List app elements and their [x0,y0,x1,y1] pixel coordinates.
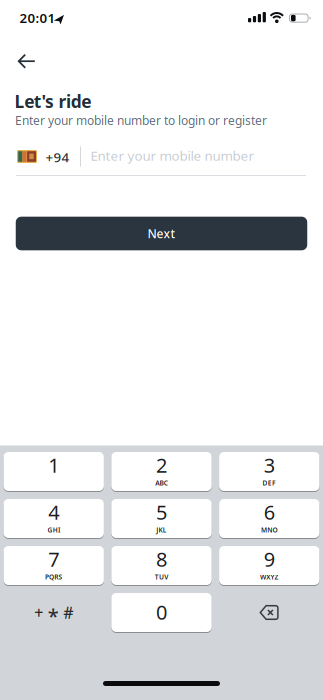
staticText: Next [147,225,175,241]
staticText: # [63,602,73,623]
staticText: MNO [261,526,277,534]
button[interactable]: Back [7,50,45,72]
button[interactable]: 8 [111,546,212,585]
staticText: +94 [45,148,69,166]
staticText: 9 [264,546,275,572]
staticText: Enter your mobile number to login or reg… [15,112,267,128]
button[interactable]: Next [16,217,307,250]
staticText: 4 [48,499,59,525]
button[interactable]: 5 [111,499,212,538]
staticText: DEF [263,479,276,487]
button[interactable]: 4 [3,499,104,538]
staticText: ABC [155,479,168,487]
staticText: 7 [48,546,59,572]
button[interactable]: 6 [219,499,319,538]
staticText: 20:01 [19,9,55,27]
staticText: * [48,602,59,629]
button[interactable]: 9 [219,546,319,585]
staticText: TUV [155,573,168,581]
staticText: 2 [156,452,167,478]
staticText: 1 [48,452,59,478]
button[interactable]: 3 [219,452,319,491]
staticText: Let's ride [14,90,91,113]
button[interactable]: 0 [111,593,212,632]
staticText: 6 [264,499,275,525]
staticText: WXYZ [260,573,279,581]
staticText: GHI [47,526,60,534]
staticText: PQRS [45,573,62,581]
button[interactable]: More symbols [3,593,104,632]
staticText: Enter your mobile number [90,147,254,164]
button[interactable]: 1 [3,452,104,491]
button[interactable]: 2 [111,452,212,491]
button[interactable]: Enter your mobile number [90,142,305,168]
button[interactable]: Delete [219,593,319,632]
staticText: 8 [156,546,167,572]
staticText: 3 [264,452,275,478]
staticText: 5 [156,499,167,525]
staticText: JKL [156,526,167,534]
button[interactable]: 7 [3,546,104,585]
staticText: + [34,602,43,623]
staticText: 0 [156,599,167,625]
